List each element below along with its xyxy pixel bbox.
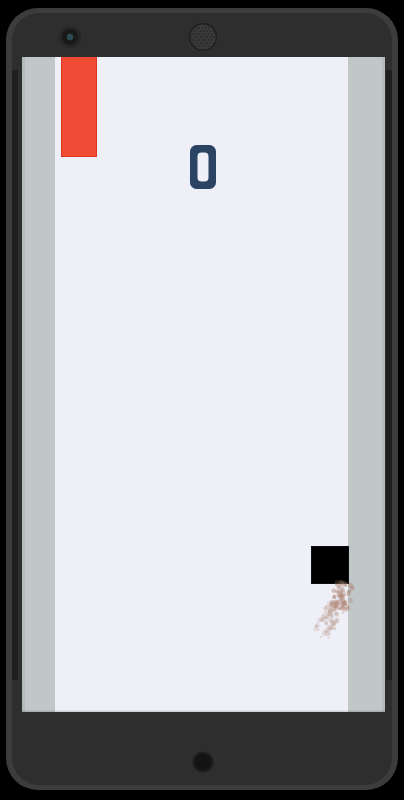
- button[interactable]: Game screen: [0, 0, 404, 800]
